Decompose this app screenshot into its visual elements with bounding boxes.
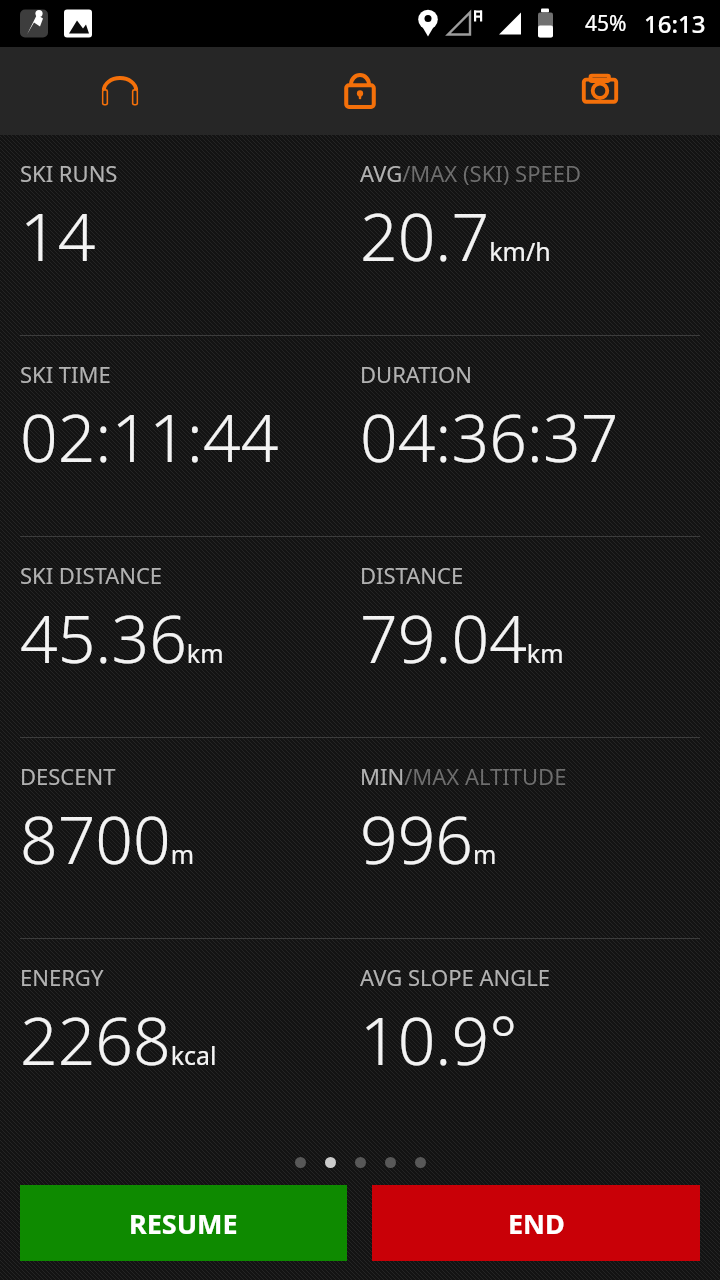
staticText: SKI DISTANCE [20, 560, 163, 590]
button[interactable]: MIN/MAX ALTITUDE [360, 738, 720, 938]
staticText: END [508, 1205, 565, 1242]
button[interactable]: ENERGY [20, 939, 360, 1139]
staticText: 996m [360, 793, 497, 883]
button[interactable]: AVG SLOPE ANGLE [360, 939, 720, 1139]
staticText: AVG SLOPE ANGLE [360, 962, 551, 992]
staticText: 02:11:44 [20, 391, 279, 481]
button[interactable]: DISTANCE [360, 537, 720, 737]
staticText: RESUME [129, 1205, 238, 1242]
button[interactable]: SKI DISTANCE [20, 537, 360, 737]
button[interactable]: Music [0, 47, 240, 135]
staticText: DISTANCE [360, 560, 464, 590]
staticText: 20.7km/h [360, 190, 551, 280]
staticText: 8700m [20, 793, 195, 883]
staticText: 2268kcal [20, 994, 217, 1084]
staticText: 10.9° [360, 994, 518, 1084]
button[interactable]: SKI RUNS [20, 135, 360, 335]
staticText: 79.04km [360, 592, 564, 682]
button[interactable]: DESCENT [20, 738, 360, 938]
staticText: DESCENT [20, 761, 116, 791]
staticText: ENERGY [20, 962, 104, 992]
staticText: 04:36:37 [360, 391, 619, 481]
button[interactable]: Lock [240, 47, 480, 135]
button[interactable]: DURATION [360, 336, 720, 536]
button[interactable]: RESUME [20, 1185, 347, 1261]
button[interactable]: AVG/MAX (SKI) SPEED [360, 135, 720, 335]
staticText: 45.36km [20, 592, 224, 682]
button[interactable]: Camera [480, 47, 720, 135]
staticText: SKI TIME [20, 359, 111, 389]
staticText: SKI RUNS [20, 158, 118, 188]
staticText: AVG/MAX (SKI) SPEED [360, 158, 581, 188]
button[interactable]: END [372, 1185, 700, 1261]
staticText: DURATION [360, 359, 472, 389]
staticText: 16:13 [644, 7, 706, 40]
staticText: 14 [20, 190, 96, 280]
staticText: 45% [585, 9, 627, 38]
staticText: MIN/MAX ALTITUDE [360, 761, 567, 791]
button[interactable]: SKI TIME [20, 336, 360, 536]
